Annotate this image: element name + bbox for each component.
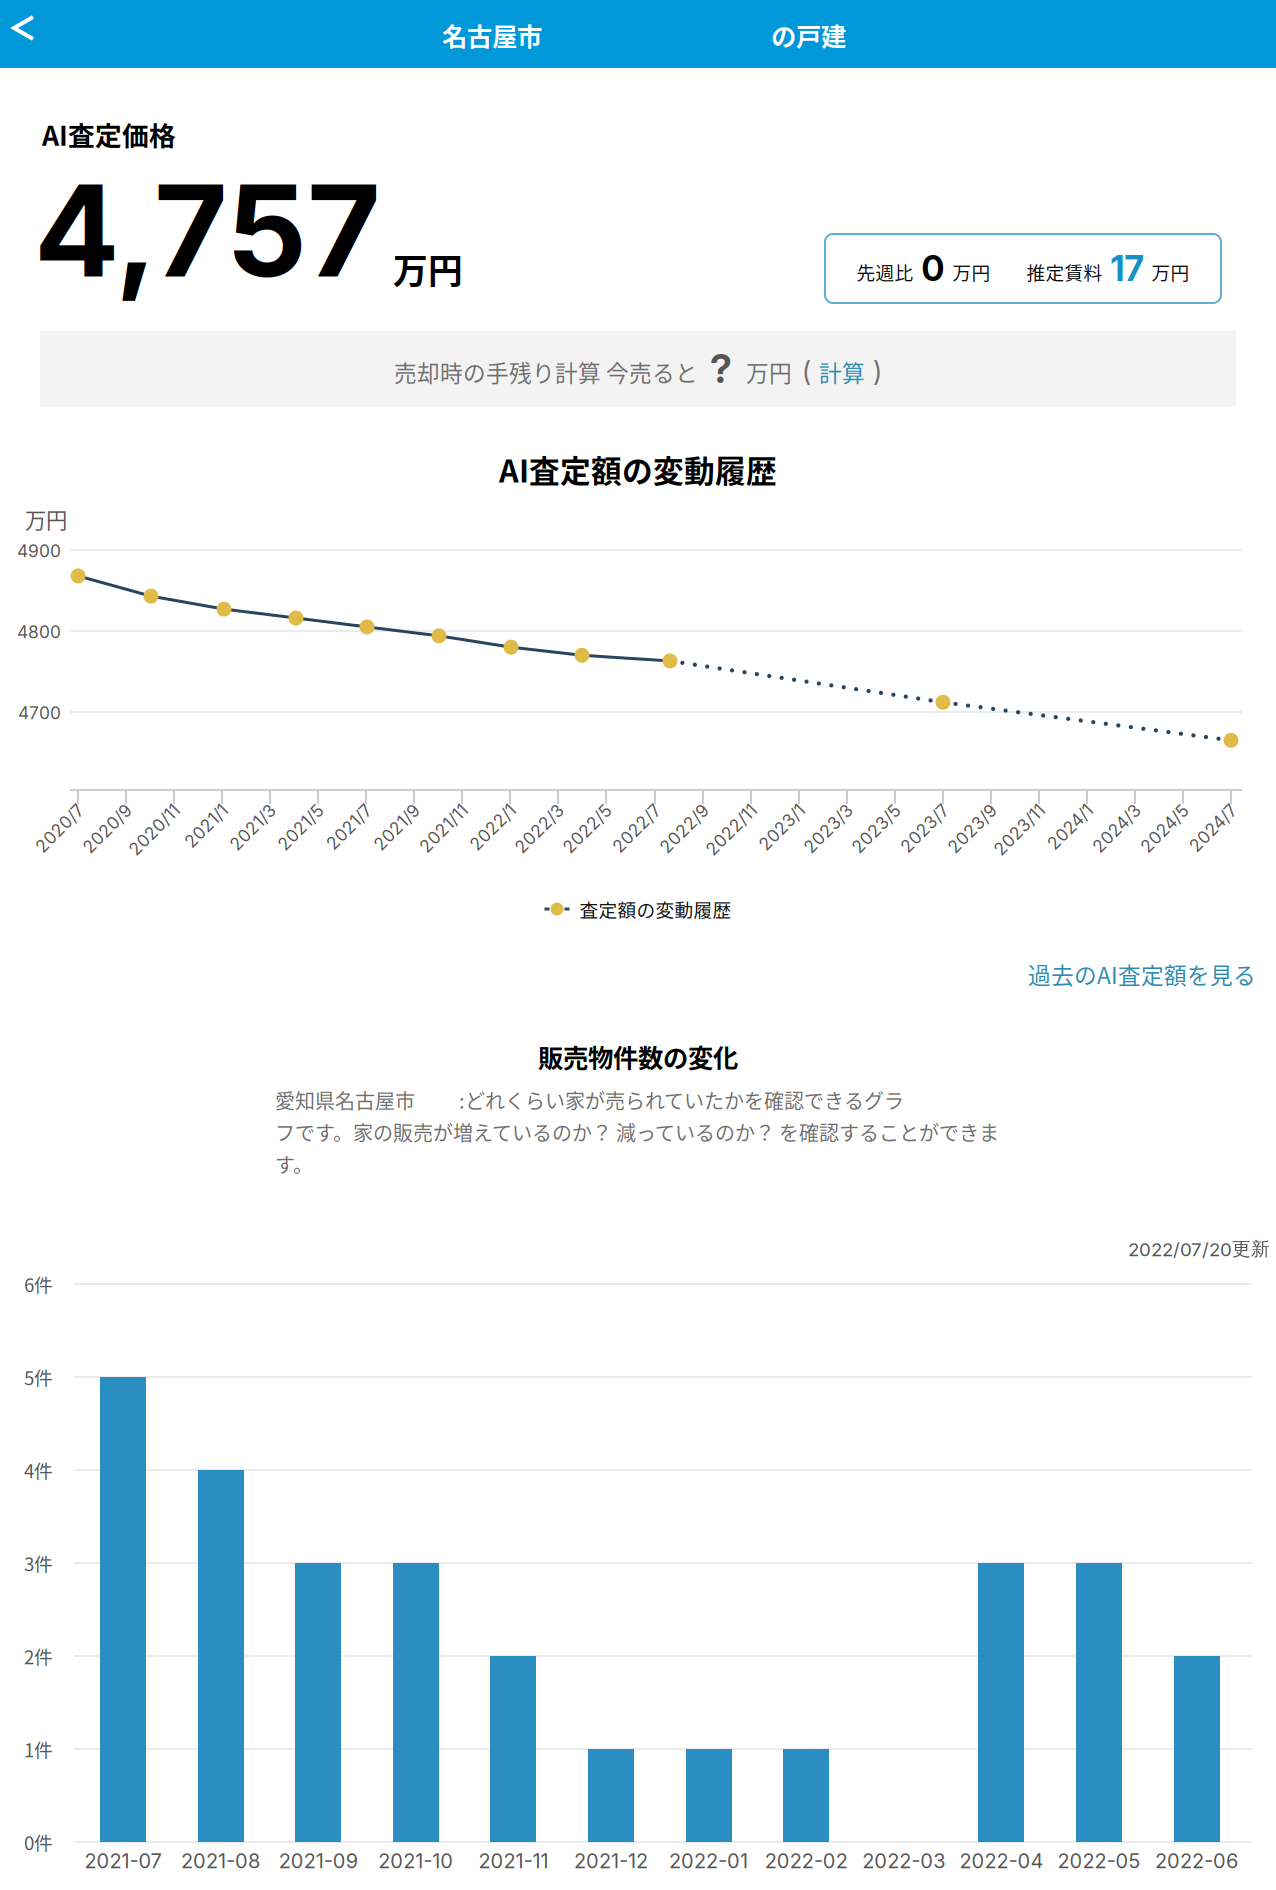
staticText: ( (802, 355, 811, 387)
staticText: の戸建 (771, 17, 846, 53)
staticText: 過去のAI査定額を見る (1028, 958, 1256, 990)
staticText: 2024/3 (1078, 796, 1138, 817)
staticText: 2022/7 (598, 796, 658, 817)
staticText: 1件 (24, 1735, 53, 1762)
staticText: ) (873, 355, 882, 387)
staticText: 2024/1 (1034, 796, 1090, 817)
staticText: 2023/7 (886, 796, 946, 817)
staticText: AI査定額の変動履歴 (499, 447, 777, 491)
staticText: 査定額の変動履歴 (579, 895, 731, 922)
staticText: 6件 (24, 1270, 53, 1297)
staticText: 2021-07 (84, 1849, 161, 1873)
staticText: 販売物件数の変化 (538, 1038, 738, 1075)
staticText: 2020/7 (21, 796, 81, 817)
staticText: 2021-08 (181, 1849, 260, 1873)
staticText: 万円 (393, 244, 463, 294)
staticText: ? (710, 346, 732, 392)
staticText: 2021/1 (172, 796, 225, 817)
staticText: 2023/1 (745, 796, 802, 817)
staticText: 0 (913, 247, 952, 289)
staticText: 2件 (24, 1642, 53, 1669)
staticText: 5件 (24, 1363, 53, 1390)
staticText: す。 (275, 1149, 313, 1178)
staticText: 万円 (952, 258, 990, 285)
staticText: 2021-10 (378, 1849, 453, 1873)
staticText: 2023/5 (837, 796, 898, 817)
staticText: 万円 (1151, 258, 1189, 285)
staticText: 2020/9 (68, 796, 129, 817)
staticText: 2021-11 (478, 1849, 548, 1873)
staticText: 名古屋市 (442, 17, 542, 53)
staticText: 4900 (17, 540, 61, 561)
staticText: 2022/07/20更新 (1128, 1237, 1270, 1261)
staticText: 2020/11 (113, 796, 177, 817)
staticText: 2022/11 (690, 796, 754, 817)
staticText: 2021/5 (264, 796, 321, 817)
staticText: 4件 (24, 1456, 53, 1483)
staticText: 2024/5 (1126, 796, 1186, 817)
staticText: 2022-02 (765, 1849, 848, 1873)
staticText: 2022-04 (959, 1849, 1043, 1873)
staticText: 2021/7 (313, 796, 369, 817)
staticText: 4800 (17, 621, 61, 642)
staticText: 2022/5 (548, 796, 609, 817)
staticText: 2022-06 (1155, 1849, 1238, 1873)
staticText: 先週比 (856, 258, 913, 285)
staticText: 2022/1 (456, 796, 513, 817)
staticText: 2024/7 (1175, 796, 1234, 817)
staticText: 2023/11 (978, 796, 1042, 817)
staticText: 売却時の手残り計算 今売ると (394, 356, 698, 388)
staticText: AI査定価格 (42, 115, 176, 153)
button[interactable]: Back (0, 0, 58, 62)
staticText: 3件 (24, 1549, 53, 1576)
staticText: 2021-09 (279, 1849, 358, 1873)
staticText: 2022-03 (862, 1849, 945, 1873)
staticText: 推定賃料 (1026, 258, 1102, 285)
staticText: 2022-05 (1057, 1849, 1140, 1873)
staticText: 4700 (18, 702, 61, 723)
staticText: 万円 (746, 356, 792, 388)
staticText: フです。家の販売が増えているのか？ 減っているのか？ を確認することができま (275, 1117, 999, 1146)
staticText: 17 (1102, 247, 1151, 289)
staticText: 2021/9 (360, 796, 417, 817)
staticText: 万円 (25, 504, 67, 534)
staticText: 2023/9 (933, 796, 994, 817)
staticText: 0件 (24, 1828, 53, 1855)
staticText: 4,757 (34, 154, 381, 307)
staticText: 2023/3 (789, 796, 850, 817)
button[interactable]: 過去のAI査定額を見る (856, 954, 1256, 994)
staticText: 2022-01 (669, 1849, 748, 1873)
staticText: 2021-12 (574, 1849, 648, 1873)
staticText: 愛知県名古屋市 :どれくらい家が売られていたかを確認できるグラ (275, 1085, 904, 1114)
staticText: 2021/3 (216, 796, 273, 817)
staticText: 2022/3 (500, 796, 561, 817)
staticText: 2022/9 (645, 796, 706, 817)
button[interactable]: 計算 (819, 356, 865, 392)
staticText: 2021/11 (405, 796, 465, 817)
staticText: 計算 (819, 356, 865, 388)
